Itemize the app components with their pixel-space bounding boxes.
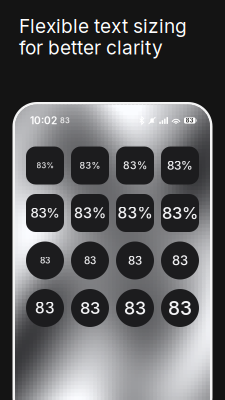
button[interactable]: 83	[71, 289, 109, 327]
staticText: 83	[172, 253, 188, 268]
button[interactable]: 83	[161, 289, 199, 327]
staticText: 83	[84, 254, 96, 267]
button[interactable]: 83%	[161, 146, 199, 184]
staticText: 83	[40, 255, 50, 266]
button[interactable]: 83	[116, 241, 154, 279]
staticText: 83	[168, 296, 192, 320]
staticText: 83%	[162, 203, 198, 223]
button[interactable]: 83	[26, 289, 64, 327]
button[interactable]: 83	[116, 289, 154, 327]
button[interactable]: 83%	[26, 194, 64, 232]
button[interactable]: 83%	[71, 146, 109, 184]
staticText: 83%	[74, 204, 106, 222]
button[interactable]: 83	[71, 241, 109, 279]
staticText: 83%	[36, 161, 53, 170]
staticText: 83%	[123, 159, 147, 172]
button[interactable]: 83%	[161, 194, 199, 232]
staticText: 83%	[79, 160, 100, 171]
staticText: for better clarity	[19, 36, 163, 59]
staticText: 83%	[30, 205, 59, 221]
button[interactable]: 83%	[116, 194, 154, 232]
button[interactable]: 83%	[71, 194, 109, 232]
staticText: 83	[60, 116, 70, 125]
staticText: 83%	[167, 158, 193, 173]
staticText: 83	[35, 299, 55, 317]
staticText: 83	[186, 117, 194, 124]
button[interactable]: 83	[26, 241, 64, 279]
button[interactable]: 83%	[116, 146, 154, 184]
staticText: 83	[124, 297, 146, 319]
staticText: 83%	[117, 204, 152, 222]
staticText: 10:02	[30, 114, 57, 127]
staticText: 83	[80, 298, 100, 318]
staticText: 83	[128, 254, 142, 267]
staticText: Flexible text sizing	[19, 14, 187, 38]
button[interactable]: 83%	[26, 146, 64, 184]
button[interactable]: 83	[161, 241, 199, 279]
